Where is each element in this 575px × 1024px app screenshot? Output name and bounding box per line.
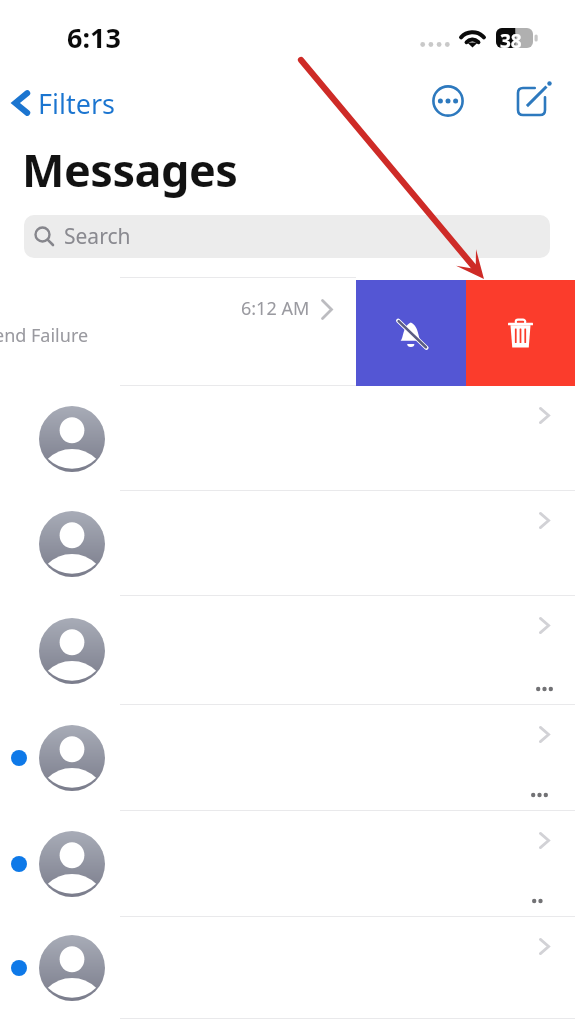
- button[interactable]: Compose new message: [508, 76, 558, 126]
- button[interactable]: [0, 386, 575, 491]
- button[interactable]: end Failure: [0, 277, 575, 386]
- staticText: Messages: [22, 139, 238, 200]
- button[interactable]: [0, 596, 575, 705]
- button[interactable]: More options: [426, 79, 470, 123]
- staticText: end Failure: [0, 323, 89, 348]
- button[interactable]: [0, 705, 575, 811]
- staticText: Filters: [38, 85, 116, 122]
- button[interactable]: [0, 811, 575, 917]
- staticText: 6:12 AM: [241, 296, 310, 321]
- button[interactable]: Filters: [8, 82, 116, 124]
- staticText: 6:13: [67, 19, 121, 56]
- button[interactable]: [0, 917, 575, 1019]
- button[interactable]: Mute: [356, 280, 466, 386]
- button[interactable]: [0, 491, 575, 596]
- button[interactable]: Delete: [466, 280, 575, 386]
- staticText: Search: [64, 222, 131, 251]
- staticText: 38: [500, 28, 522, 48]
- button[interactable]: Search: [24, 215, 550, 258]
